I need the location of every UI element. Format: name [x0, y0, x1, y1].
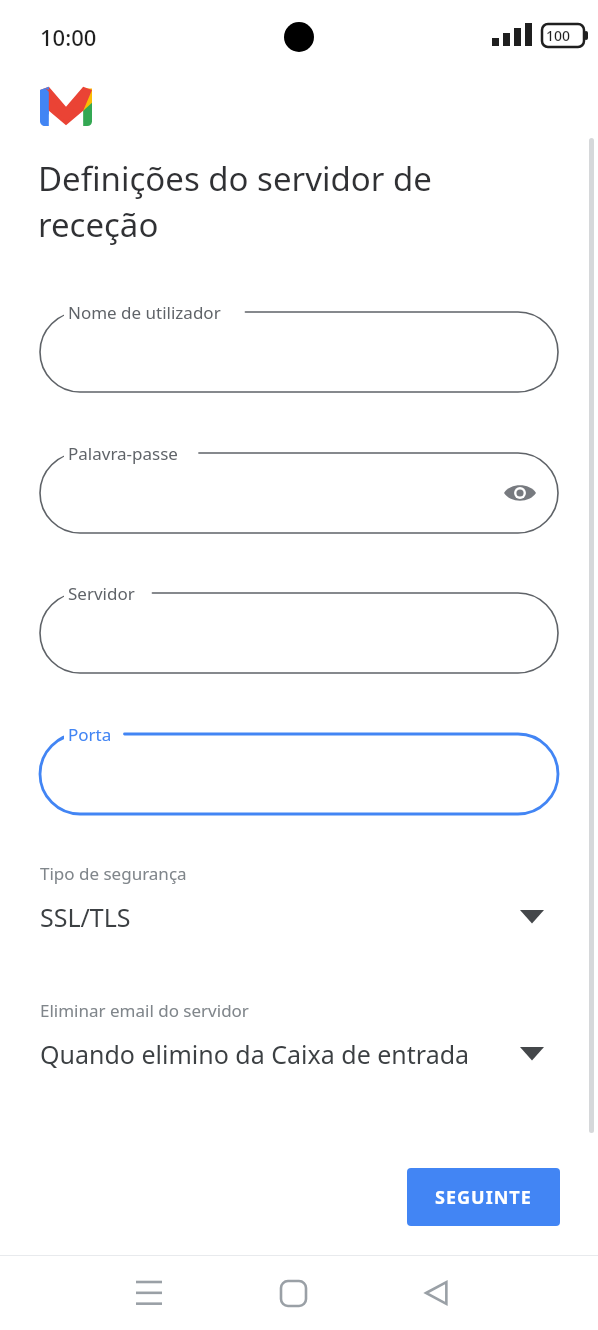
- button[interactable]: Porta: [40, 734, 558, 814]
- button[interactable]: SEGUINTE: [407, 1168, 560, 1226]
- button[interactable]: Palavra-passe: [40, 453, 558, 533]
- staticText: SSL/TLS: [40, 900, 131, 934]
- button[interactable]: Anterior: [398, 1256, 476, 1330]
- staticText: Eliminar email do servidor: [40, 999, 249, 1022]
- staticText: Tipo de segurança: [40, 862, 187, 885]
- staticText: Quando elimino da Caixa de entrada: [40, 1037, 470, 1071]
- button[interactable]: Início: [254, 1256, 332, 1330]
- staticText: Palavra-passe: [68, 442, 178, 465]
- button[interactable]: Nome de utilizador: [40, 312, 558, 392]
- staticText: 100: [546, 26, 571, 45]
- staticText: Nome de utilizador: [68, 301, 221, 324]
- button[interactable]: Eliminar email do servidor: [0, 999, 598, 1099]
- button[interactable]: Tipo de segurança: [0, 862, 598, 962]
- button[interactable]: Recentes: [110, 1256, 188, 1330]
- staticText: Servidor: [68, 582, 135, 605]
- staticText: Porta: [68, 723, 112, 746]
- staticText: Definições do servidor de receção: [38, 156, 538, 247]
- staticText: SEGUINTE: [435, 1185, 532, 1210]
- button[interactable]: Mostrar palavra-passe: [496, 469, 544, 517]
- staticText: 10:00: [40, 22, 97, 52]
- button[interactable]: Servidor: [40, 593, 558, 673]
